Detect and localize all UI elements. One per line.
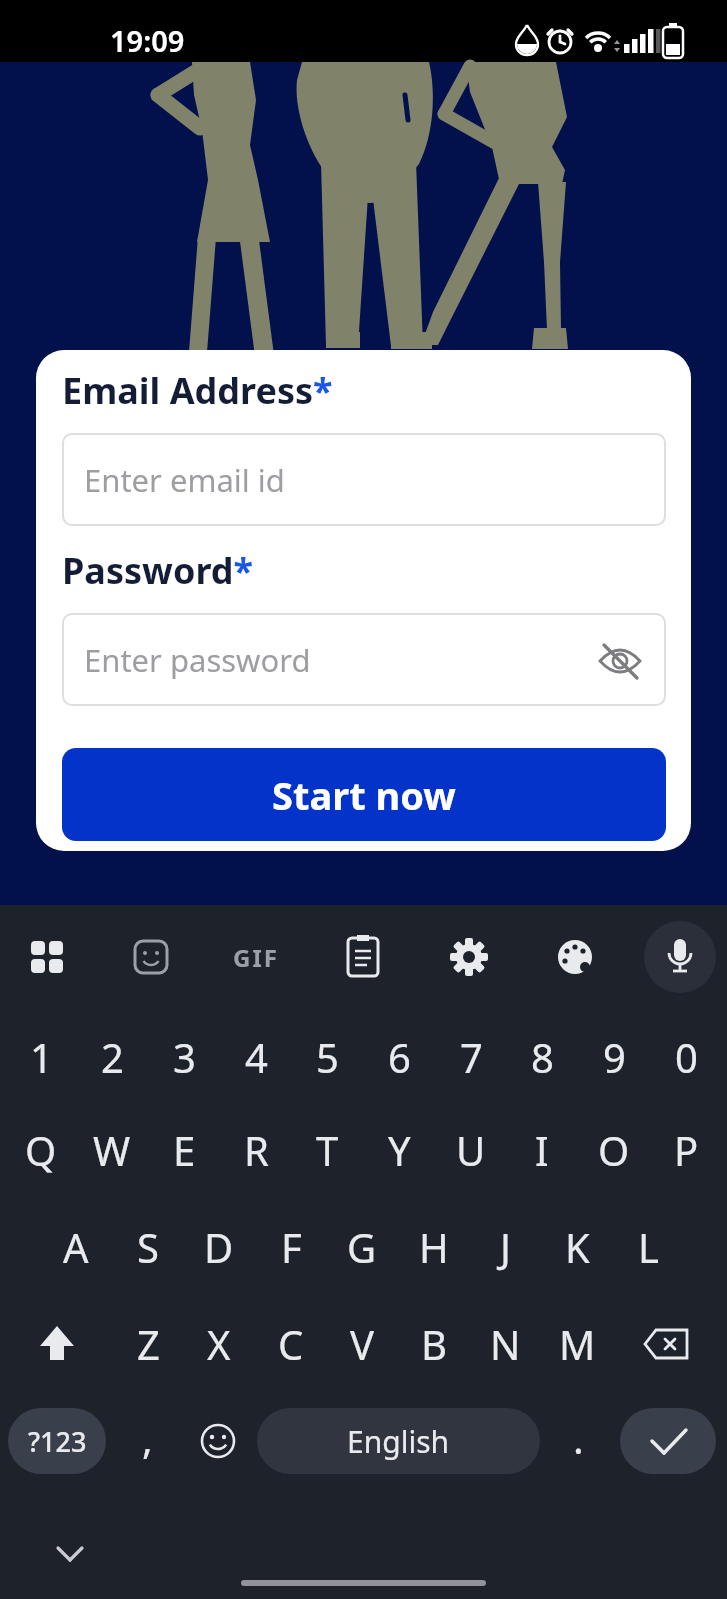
staticText: B	[421, 1317, 447, 1371]
staticText: ,	[142, 1411, 153, 1465]
staticText: Enter password	[84, 639, 311, 681]
button[interactable]: Q	[8, 1117, 74, 1183]
button[interactable]: 1	[8, 1024, 74, 1090]
staticText: GIF	[233, 941, 279, 974]
staticText: X	[207, 1317, 231, 1371]
button[interactable]: 2	[79, 1024, 145, 1090]
staticText: 2	[101, 1030, 124, 1084]
staticText: K	[565, 1220, 590, 1274]
button[interactable]: J	[472, 1214, 538, 1280]
button[interactable]: 5	[294, 1024, 360, 1090]
button[interactable]: Start now	[62, 748, 666, 841]
button[interactable]	[620, 1408, 716, 1474]
staticText: I	[535, 1123, 549, 1177]
button[interactable]	[17, 927, 77, 987]
staticText: Start now	[272, 769, 456, 821]
button[interactable]: 9	[581, 1024, 647, 1090]
staticText: O	[598, 1123, 630, 1177]
button[interactable]	[121, 927, 181, 987]
staticText: D	[204, 1220, 234, 1274]
button[interactable]: C	[258, 1311, 324, 1377]
button[interactable]: P	[653, 1117, 719, 1183]
button[interactable]	[188, 1411, 248, 1471]
button[interactable]: B	[401, 1311, 467, 1377]
button[interactable]: L	[615, 1214, 681, 1280]
button[interactable]: W	[79, 1117, 145, 1183]
staticText: 1	[30, 1030, 53, 1084]
button[interactable]	[46, 1534, 94, 1574]
staticText: G	[347, 1220, 377, 1274]
button[interactable]: 3	[151, 1024, 217, 1090]
staticText: Enter email id	[84, 459, 285, 501]
button[interactable]	[24, 1311, 90, 1377]
staticText: C	[278, 1317, 304, 1371]
staticText: .	[573, 1411, 584, 1465]
button[interactable]: Enter password	[62, 613, 666, 706]
staticText: 0	[675, 1030, 698, 1084]
button[interactable]: Z	[115, 1311, 181, 1377]
button[interactable]: Y	[366, 1117, 432, 1183]
staticText: 9	[603, 1030, 626, 1084]
button[interactable]: 6	[366, 1024, 432, 1090]
button[interactable]: 4	[223, 1024, 289, 1090]
staticText: V	[350, 1317, 374, 1371]
button[interactable]: E	[151, 1117, 217, 1183]
staticText: 3	[173, 1030, 196, 1084]
button[interactable]: S	[115, 1214, 181, 1280]
staticText: T	[316, 1123, 339, 1177]
staticText: Password*	[62, 546, 254, 595]
staticText: Q	[25, 1123, 57, 1177]
staticText: M	[559, 1317, 596, 1371]
staticText: L	[638, 1220, 659, 1274]
button[interactable]: V	[329, 1311, 395, 1377]
button[interactable]: T	[294, 1117, 360, 1183]
staticText: ?123	[28, 1423, 87, 1460]
button[interactable]	[596, 636, 644, 684]
button[interactable]: Enter email id	[62, 433, 666, 526]
button[interactable]	[439, 927, 499, 987]
button[interactable]: English	[257, 1408, 540, 1474]
staticText: E	[173, 1123, 196, 1177]
button[interactable]: .	[558, 1408, 598, 1468]
button[interactable]: A	[43, 1214, 109, 1280]
staticText: Email Address*	[62, 366, 333, 415]
button[interactable]: K	[544, 1214, 610, 1280]
staticText: R	[244, 1123, 269, 1177]
staticText: 8	[531, 1030, 554, 1084]
button[interactable]: GIF	[221, 937, 291, 977]
button[interactable]: M	[544, 1311, 610, 1377]
staticText: A	[63, 1220, 89, 1274]
button[interactable]: ?123	[8, 1408, 106, 1474]
staticText: 7	[460, 1030, 483, 1084]
staticText: P	[674, 1123, 699, 1177]
staticText: 19:09	[110, 21, 185, 60]
staticText: 5	[316, 1030, 339, 1084]
button[interactable]: 8	[509, 1024, 575, 1090]
button[interactable]: I	[509, 1117, 575, 1183]
staticText: U	[456, 1123, 486, 1177]
button[interactable]	[650, 927, 710, 987]
button[interactable]: N	[472, 1311, 538, 1377]
button[interactable]	[545, 927, 605, 987]
button[interactable]: 7	[438, 1024, 504, 1090]
staticText: Z	[137, 1317, 160, 1371]
button[interactable]: G	[329, 1214, 395, 1280]
button[interactable]: F	[258, 1214, 324, 1280]
button[interactable]: H	[401, 1214, 467, 1280]
staticText: S	[137, 1220, 159, 1274]
button[interactable]: 0	[653, 1024, 719, 1090]
staticText: F	[281, 1220, 302, 1274]
button[interactable]: X	[186, 1311, 252, 1377]
staticText: Y	[388, 1123, 411, 1177]
staticText: 4	[245, 1030, 268, 1084]
staticText: English	[347, 1421, 450, 1462]
button[interactable]	[333, 927, 393, 987]
staticText: J	[500, 1220, 511, 1274]
button[interactable]: U	[438, 1117, 504, 1183]
button[interactable]	[633, 1311, 699, 1377]
staticText: 6	[388, 1030, 411, 1084]
button[interactable]: D	[186, 1214, 252, 1280]
button[interactable]: ,	[127, 1408, 167, 1468]
button[interactable]: R	[223, 1117, 289, 1183]
button[interactable]: O	[581, 1117, 647, 1183]
